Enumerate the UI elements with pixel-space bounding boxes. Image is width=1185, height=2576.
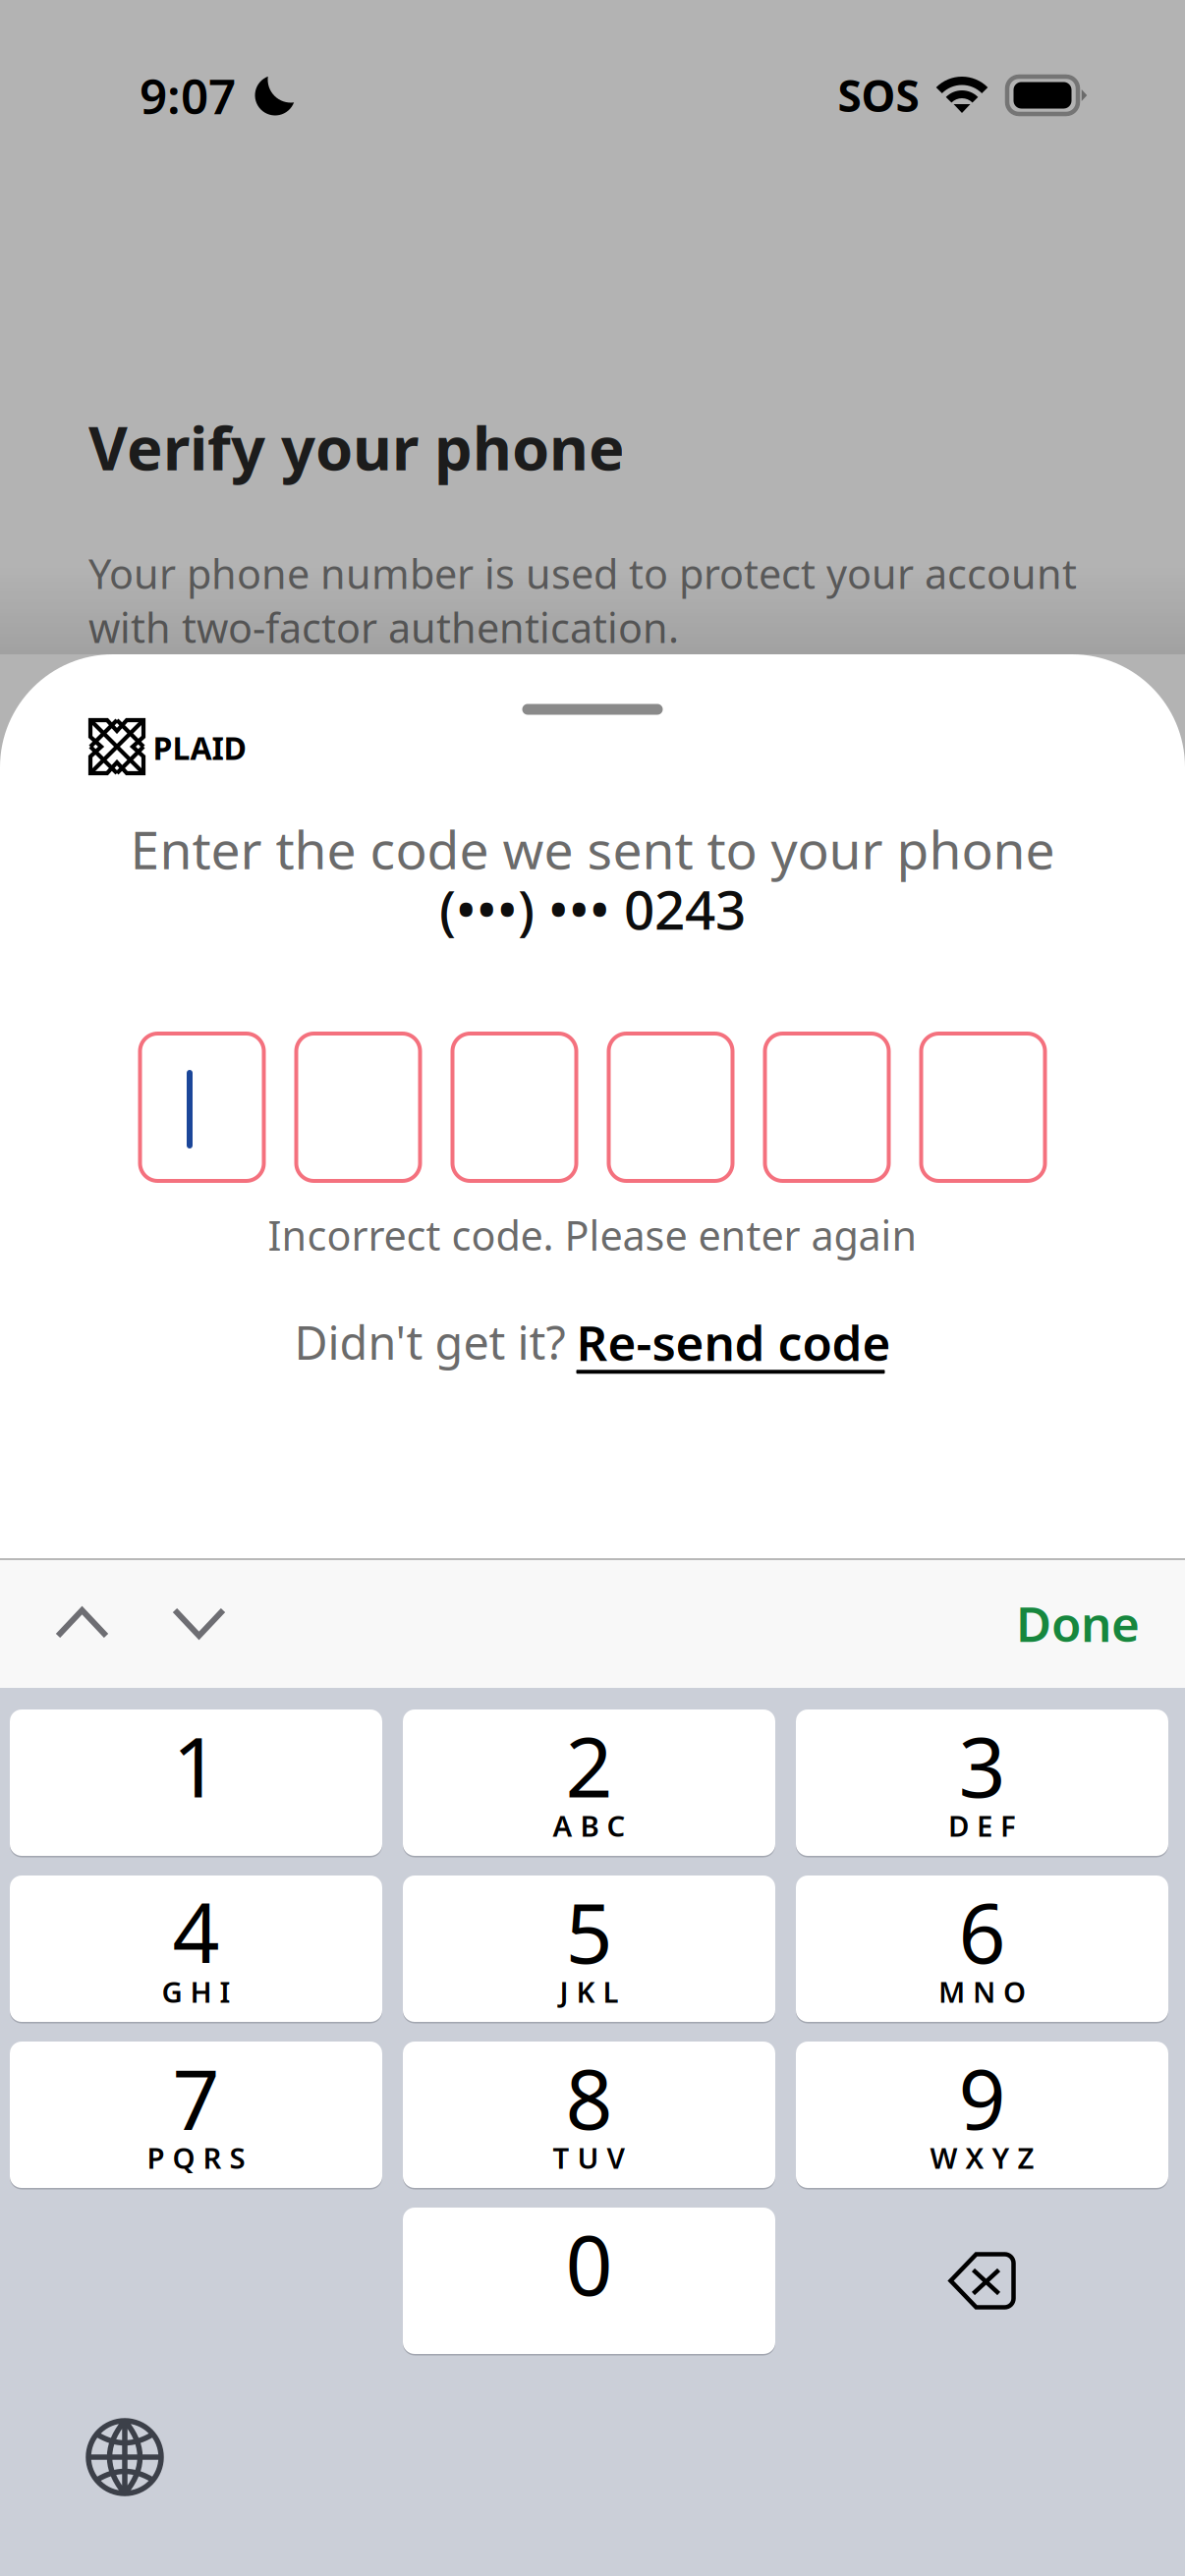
staticText: 5 xyxy=(565,1877,613,1986)
button[interactable]: Delete xyxy=(796,2208,1168,2354)
staticText: J K L xyxy=(560,1972,619,2011)
staticText: Done xyxy=(1016,1591,1140,1655)
staticText: Didn't get it? xyxy=(294,1312,565,1372)
button[interactable]: Re-send code xyxy=(576,1310,891,1374)
staticText: Verify your phone xyxy=(88,407,625,487)
button[interactable]: Done xyxy=(980,1558,1176,1688)
staticText: Re-send code xyxy=(576,1310,891,1374)
staticText: D E F xyxy=(948,1806,1016,1845)
staticText: 0 xyxy=(565,2209,613,2318)
staticText: PLAID xyxy=(153,727,246,769)
button[interactable]: 4 xyxy=(10,1876,382,2022)
button[interactable]: 6 xyxy=(796,1876,1168,2022)
staticText: 9 xyxy=(959,2043,1006,2152)
button[interactable]: 2 xyxy=(403,1709,775,1856)
staticText: W X Y Z xyxy=(930,2138,1034,2177)
staticText: M N O xyxy=(938,1972,1026,2011)
button[interactable]: Next field xyxy=(135,1558,263,1688)
staticText: 7 xyxy=(172,2043,220,2152)
button[interactable]: Previous field xyxy=(18,1558,146,1688)
staticText: 3 xyxy=(959,1711,1006,1820)
staticText: SOS xyxy=(838,67,919,124)
button[interactable]: Next keyboard xyxy=(56,2388,194,2526)
staticText: 8 xyxy=(565,2043,613,2152)
button[interactable]: 8 xyxy=(403,2042,775,2188)
staticText: 1 xyxy=(172,1711,220,1820)
staticText: (•••) ••• 0243 xyxy=(439,873,746,944)
staticText: 6 xyxy=(959,1877,1006,1986)
button[interactable]: 7 xyxy=(10,2042,382,2188)
staticText: Enter the code we sent to your phone xyxy=(130,814,1055,884)
button[interactable]: 5 xyxy=(403,1876,775,2022)
staticText: P Q R S xyxy=(147,2138,245,2177)
staticText: A B C xyxy=(553,1806,625,1845)
staticText: G H I xyxy=(162,1972,230,2011)
staticText: Incorrect code. Please enter again xyxy=(268,1208,917,1262)
staticText: Your phone number is used to protect you… xyxy=(88,546,1077,654)
button[interactable]: 3 xyxy=(796,1709,1168,1856)
staticText: T U V xyxy=(553,2138,625,2177)
staticText: 2 xyxy=(565,1711,613,1820)
button[interactable]: 0 xyxy=(403,2208,775,2354)
button[interactable]: 1 xyxy=(10,1709,382,1856)
staticText: 4 xyxy=(172,1877,220,1986)
staticText: 9:07 xyxy=(140,63,236,127)
button[interactable]: 9 xyxy=(796,2042,1168,2188)
